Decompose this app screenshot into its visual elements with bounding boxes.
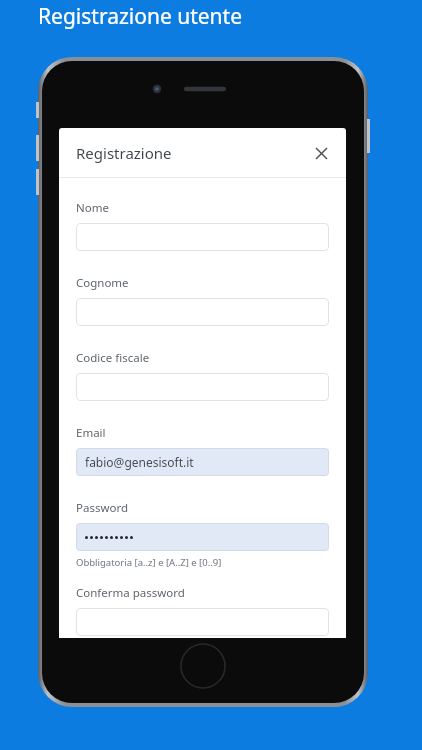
button[interactable] bbox=[76, 373, 329, 401]
staticText: Cognome bbox=[76, 275, 129, 291]
staticText: Conferma password bbox=[76, 585, 185, 601]
button[interactable] bbox=[76, 223, 329, 251]
button[interactable]: fabio@genesisoft.it bbox=[76, 448, 329, 476]
staticText: Registrazione utente bbox=[38, 2, 242, 31]
staticText: Registrazione bbox=[76, 143, 172, 163]
staticText: Password bbox=[76, 500, 129, 516]
staticText: Obbligatoria [a..z] e [A..Z] e [0..9] bbox=[76, 556, 222, 569]
staticText: Email bbox=[76, 425, 106, 441]
button[interactable] bbox=[76, 298, 329, 326]
button[interactable]: Chiudi bbox=[306, 138, 336, 168]
button[interactable]: Home bbox=[180, 643, 226, 689]
staticText: Nome bbox=[76, 200, 109, 216]
button[interactable] bbox=[76, 608, 329, 636]
staticText: Codice fiscale bbox=[76, 350, 150, 366]
staticText: fabio@genesisoft.it bbox=[85, 454, 194, 470]
button[interactable] bbox=[76, 523, 329, 551]
